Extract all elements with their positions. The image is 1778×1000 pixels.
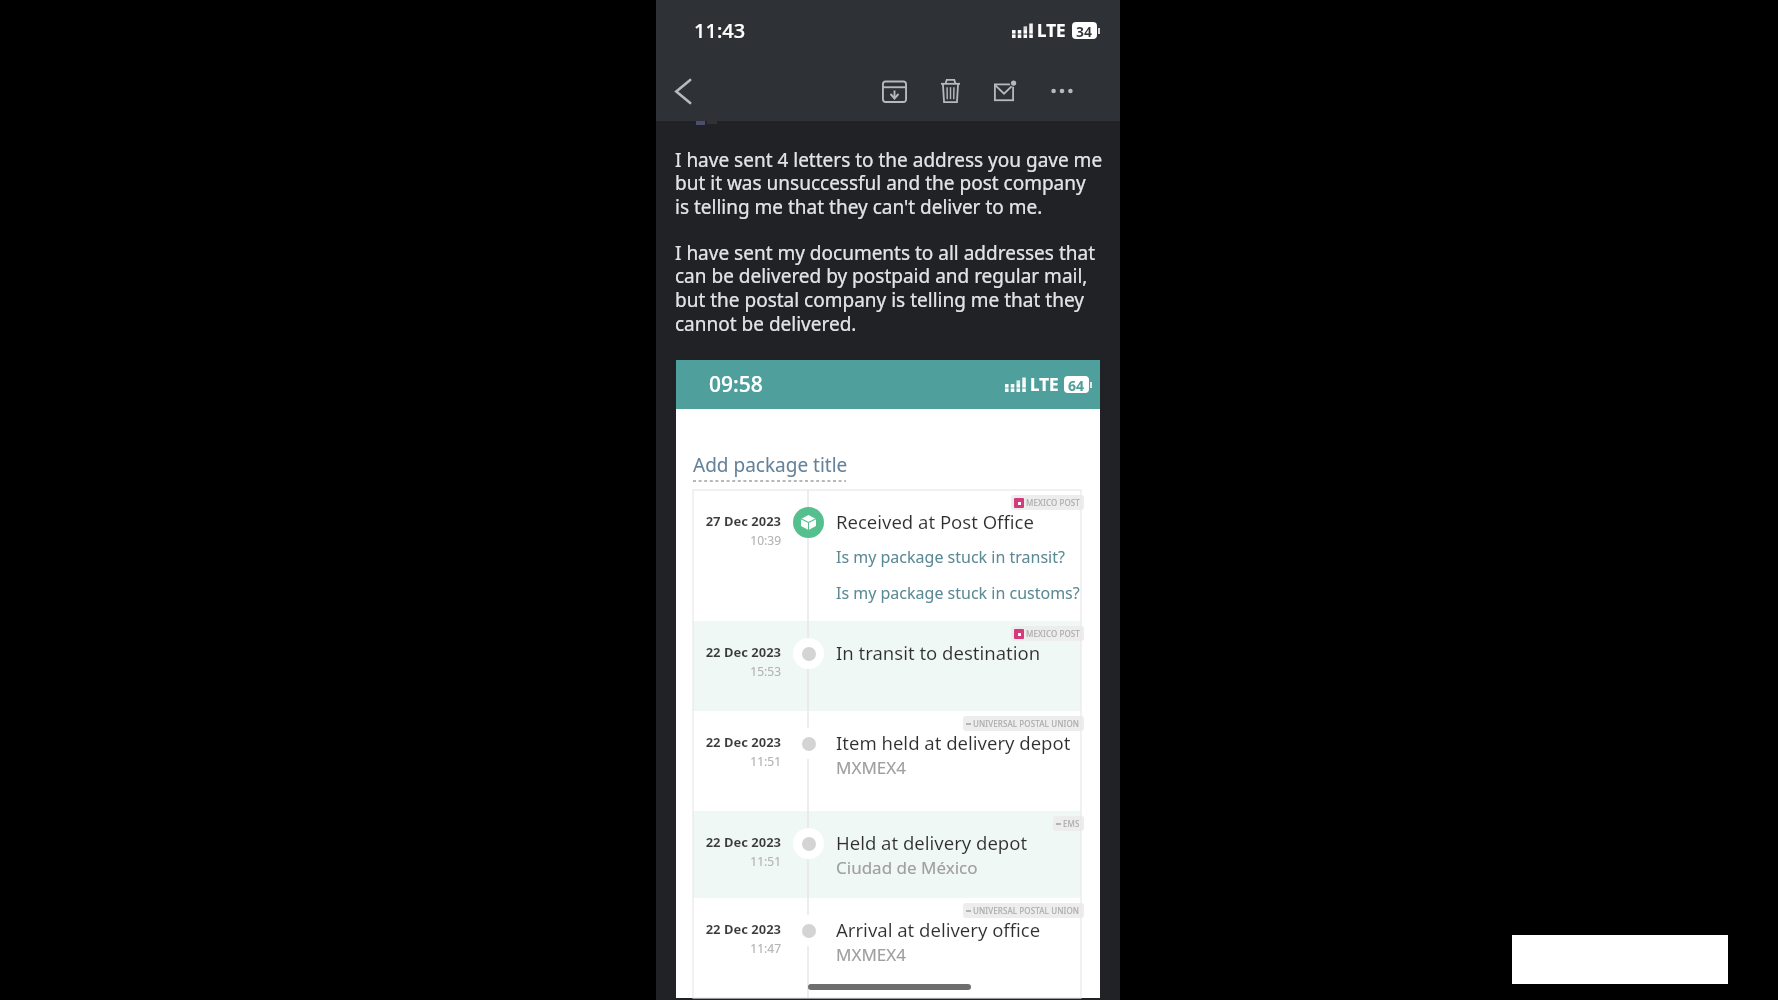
staticText: 22 Dec 2023 (693, 643, 781, 661)
staticText: Held at delivery depot (836, 830, 1028, 855)
staticText: MEXICO POST (1026, 497, 1080, 508)
button[interactable]: More options (1034, 63, 1090, 119)
staticText: MEXICO POST (1026, 628, 1080, 639)
staticText: 64 (1068, 376, 1085, 393)
staticText: MXMEX4 (836, 943, 906, 966)
staticText: Arrival at delivery office (836, 917, 1041, 942)
staticText: EMS (1063, 818, 1080, 829)
button[interactable]: Mark as unread (978, 63, 1034, 119)
staticText: LTE (1037, 19, 1066, 42)
staticText: 15:53 (693, 663, 781, 679)
staticText: 22 Dec 2023 (693, 833, 781, 851)
button[interactable]: Delete (922, 63, 978, 119)
staticText: I have sent 4 letters to the address you… (675, 147, 1103, 220)
button[interactable]: 22 Dec 2023 (693, 898, 1081, 998)
staticText: Is my package stuck in transit? (836, 546, 1065, 568)
staticText: UNIVERSAL POSTAL UNION (973, 718, 1080, 729)
button[interactable]: 22 Dec 2023 (693, 621, 1081, 711)
button[interactable]: 22 Dec 2023 (693, 711, 1081, 811)
staticText: 22 Dec 2023 (693, 920, 781, 938)
staticText: Add package title (693, 452, 848, 478)
staticText: 11:43 (694, 17, 746, 44)
staticText: UNIVERSAL POSTAL UNION (973, 905, 1080, 916)
staticText: 09:58 (709, 370, 763, 399)
button[interactable]: Is my package stuck in customs? (836, 576, 1080, 610)
button[interactable]: Back (656, 63, 710, 119)
staticText: In transit to destination (836, 640, 1041, 665)
button[interactable]: Is my package stuck in transit? (836, 540, 1065, 574)
staticText: 22 Dec 2023 (693, 733, 781, 751)
staticText: 11:47 (693, 940, 781, 956)
staticText: Ciudad de México (836, 856, 978, 879)
button[interactable]: Archive (866, 63, 922, 119)
staticText: I have sent my documents to all addresse… (675, 240, 1095, 337)
staticText: Item held at delivery depot (836, 730, 1071, 755)
staticText: 34 (1076, 22, 1093, 39)
staticText: 11:51 (693, 853, 781, 869)
staticText: 10:39 (693, 532, 781, 548)
button[interactable]: 27 Dec 2023 (693, 490, 1081, 621)
button[interactable]: Add package title (693, 452, 848, 483)
staticText: LTE (1030, 373, 1059, 396)
staticText: 11:51 (693, 753, 781, 769)
staticText: MXMEX4 (836, 756, 906, 779)
button[interactable]: 22 Dec 2023 (693, 811, 1081, 898)
staticText: 27 Dec 2023 (693, 512, 781, 530)
staticText: Received at Post Office (836, 509, 1034, 534)
staticText: Is my package stuck in customs? (836, 582, 1080, 604)
